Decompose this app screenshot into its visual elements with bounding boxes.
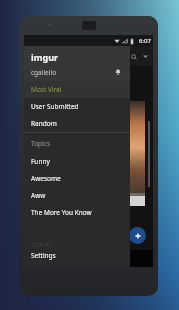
- button[interactable]: imgur: [24, 46, 130, 81]
- staticText: User Submitted: [31, 102, 79, 111]
- staticText: 6:07: [139, 37, 151, 45]
- staticText: cgaliello: [31, 68, 57, 77]
- staticText: imgur: [31, 51, 59, 63]
- button[interactable]: Storyti: [24, 240, 130, 247]
- staticText: Random: [31, 119, 57, 128]
- button[interactable]: Upload: [129, 227, 146, 244]
- staticText: The More You Know: [31, 208, 92, 217]
- staticText: Settings: [31, 251, 56, 260]
- button[interactable]: Awesome: [24, 170, 130, 187]
- button[interactable]: Search: [129, 52, 138, 61]
- button[interactable]: The More You Know: [24, 204, 130, 221]
- button[interactable]: Settings: [24, 247, 130, 264]
- staticText: Topics: [31, 139, 50, 148]
- button[interactable]: Funny: [24, 153, 130, 170]
- staticText: Most Viral: [31, 85, 62, 94]
- button[interactable]: Back: [38, 250, 62, 267]
- button[interactable]: More options: [141, 52, 150, 61]
- button[interactable]: Aww: [24, 187, 130, 204]
- button[interactable]: User Submitted: [24, 98, 130, 115]
- staticText: Funny: [31, 157, 50, 166]
- button[interactable]: Recent apps: [115, 250, 139, 267]
- staticText: Storyti: [31, 240, 51, 247]
- button[interactable]: [113, 101, 145, 206]
- button[interactable]: Most Viral: [24, 81, 130, 98]
- staticText: Awesome: [31, 174, 61, 183]
- button[interactable]: Random: [24, 115, 130, 132]
- staticText: Aww: [31, 191, 46, 200]
- button[interactable]: Notifications: [113, 67, 123, 77]
